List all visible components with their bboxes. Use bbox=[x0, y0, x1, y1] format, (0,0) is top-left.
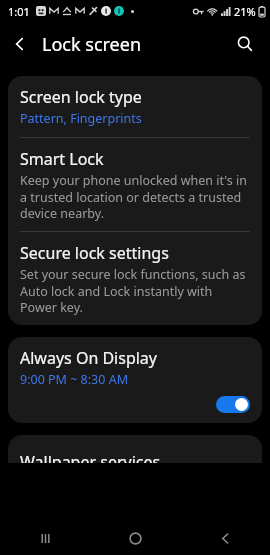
button[interactable]: Navigate up bbox=[0, 24, 40, 64]
button[interactable]: Always On Display bbox=[8, 337, 262, 423]
button[interactable]: Back bbox=[180, 521, 270, 555]
button[interactable]: Smart Lock bbox=[8, 138, 262, 231]
button[interactable]: Always On Display toggle, on bbox=[216, 396, 250, 413]
button[interactable]: Screen lock type bbox=[8, 76, 262, 137]
staticText: Smart Lock bbox=[20, 148, 104, 170]
staticText: 21% bbox=[234, 4, 256, 19]
staticText: Wallpaper services bbox=[20, 451, 161, 463]
staticText: 9:00 PM ~ 8:30 AM bbox=[20, 371, 128, 388]
staticText: Lock screen bbox=[42, 32, 142, 57]
staticText: Keep your phone unlocked when it's in a … bbox=[20, 172, 250, 221]
staticText: Secure lock settings bbox=[20, 242, 169, 264]
button[interactable]: Secure lock settings bbox=[8, 232, 262, 325]
staticText: Screen lock type bbox=[20, 86, 142, 108]
staticText: Pattern, Fingerprints bbox=[20, 110, 142, 127]
button[interactable]: Search bbox=[228, 27, 262, 61]
staticText: 1:01 bbox=[8, 4, 30, 19]
staticText: Always On Display bbox=[20, 347, 158, 369]
button[interactable]: Home bbox=[90, 521, 180, 555]
button[interactable]: Recent apps bbox=[0, 521, 90, 555]
button[interactable]: Wallpaper services bbox=[8, 435, 262, 463]
staticText: Set your secure lock functions, such as … bbox=[20, 266, 250, 315]
